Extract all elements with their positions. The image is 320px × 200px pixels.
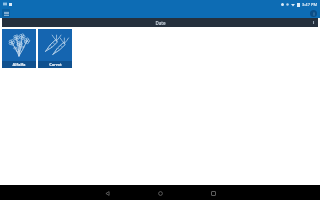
button[interactable]: Recent apps	[206, 186, 220, 200]
button[interactable]: Alfalfa	[2, 29, 36, 68]
staticText: Date	[155, 20, 166, 26]
staticText: Alfalfa	[12, 62, 26, 67]
staticText: Carrot	[49, 62, 62, 67]
button[interactable]: Carrot	[38, 29, 72, 68]
button[interactable]: Home	[153, 186, 167, 200]
staticText: 3:47 PM	[302, 2, 318, 7]
button[interactable]: Back	[100, 186, 114, 200]
button[interactable]: More options	[310, 10, 317, 17]
button[interactable]: Menu	[2, 9, 10, 17]
button[interactable]: Date	[2, 18, 318, 27]
